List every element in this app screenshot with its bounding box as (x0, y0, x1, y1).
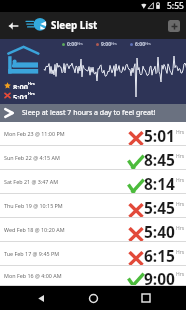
staticText: Hrs (176, 271, 185, 278)
staticText: 0:00 (67, 41, 77, 48)
button[interactable]: Back (29, 286, 53, 310)
staticText: 9:00 (101, 41, 111, 48)
staticText: Hrs (176, 225, 185, 232)
staticText: 5:45 (144, 197, 175, 218)
staticText: Hrs (176, 201, 185, 208)
staticText: Hrs (111, 41, 117, 46)
staticText: Hrs (145, 41, 151, 46)
staticText: Hrs (176, 249, 185, 256)
button[interactable]: Sun Feb 22 @ 4:15 AM (0, 146, 186, 170)
staticText: 5:01 (13, 92, 28, 99)
button[interactable]: Tue Feb 17 @ 9:45 PM (0, 242, 186, 266)
button[interactable]: Sat Feb 21 @ 3:47 AM (0, 170, 186, 194)
button[interactable]: Sleep at least 7 hours a day to feel gre… (0, 104, 186, 122)
button[interactable]: Wed Feb 18 @ 10:20 AM (0, 218, 186, 242)
staticText: 9:00 (144, 268, 175, 287)
staticText: Hrs (28, 91, 35, 96)
staticText: 8:00 (13, 82, 28, 89)
staticText: Thu Feb 19 @ 10:15 PM (4, 202, 63, 209)
staticText: Hrs (176, 153, 185, 160)
staticText: 8:14 (144, 173, 175, 194)
staticText: Sleep at least 7 hours a day to feel gre… (22, 108, 156, 118)
staticText: Hrs (28, 81, 35, 86)
staticText: Mon Feb 23 @ 11:00 PM (4, 130, 65, 137)
staticText: 5:55 (167, 0, 184, 12)
staticText: 6:00 (135, 41, 145, 48)
button[interactable]: Back (2, 12, 25, 39)
staticText: Mon Feb 16 @ 4:00 AM (4, 272, 62, 279)
button[interactable]: Home (81, 286, 105, 310)
staticText: Sleep List (51, 19, 98, 32)
button[interactable]: Mon Feb 23 @ 11:00 PM (0, 122, 186, 146)
staticText: Hrs (176, 177, 185, 184)
staticText: Sat Feb 21 @ 3:47 AM (4, 178, 59, 185)
button[interactable]: Thu Feb 19 @ 10:15 PM (0, 194, 186, 218)
staticText: Hrs (176, 129, 185, 136)
staticText: Wed Feb 18 @ 10:20 AM (4, 226, 65, 233)
button[interactable]: Add (168, 20, 180, 32)
button[interactable]: Recents (134, 286, 158, 310)
staticText: 8:45 (144, 149, 175, 170)
staticText: 5:40 (144, 221, 175, 242)
button[interactable]: Mon Feb 16 @ 4:00 AM (0, 266, 186, 286)
staticText: Hrs (77, 41, 83, 46)
staticText: 6:15 (144, 245, 175, 266)
staticText: Tue Feb 17 @ 9:45 PM (4, 250, 60, 257)
staticText: 5:01 (144, 125, 175, 146)
staticText: Sun Feb 22 @ 4:15 AM (4, 154, 60, 161)
